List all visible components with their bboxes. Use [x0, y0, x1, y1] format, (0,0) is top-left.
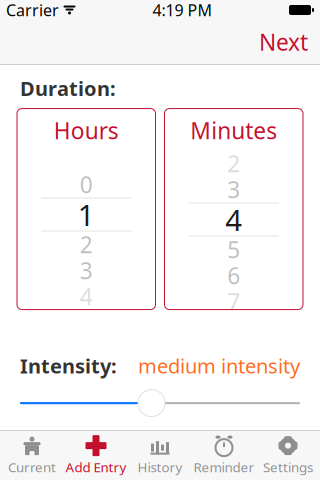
button[interactable]: Current	[0, 431, 64, 480]
staticText: 4	[225, 200, 242, 239]
staticText: 2	[227, 148, 240, 179]
button[interactable]: Next	[247, 19, 320, 65]
staticText: Minutes	[190, 115, 277, 146]
staticText: Add Entry	[65, 458, 126, 476]
staticText: Next	[259, 27, 308, 57]
staticText: Hours	[54, 115, 119, 146]
button[interactable]: Settings	[256, 431, 320, 480]
staticText: 3	[227, 174, 240, 205]
staticText: 6	[227, 260, 240, 291]
button[interactable]: Reminder	[192, 431, 256, 480]
staticText: 1	[78, 195, 95, 234]
button[interactable]: History	[128, 431, 192, 480]
staticText: 3	[80, 255, 93, 286]
staticText: History	[137, 458, 182, 476]
staticText: 7	[227, 286, 240, 317]
staticText: 0	[80, 169, 93, 200]
button[interactable]: Add Entry	[64, 431, 128, 480]
staticText: Current	[8, 458, 56, 476]
staticText: 2	[80, 229, 93, 260]
staticText: Carrier	[6, 0, 59, 21]
staticText: Settings	[263, 458, 313, 476]
staticText: 4	[80, 281, 93, 312]
staticText: 4:19 PM	[152, 0, 212, 21]
staticText: Intensity:	[20, 353, 117, 379]
staticText: 5	[227, 234, 240, 265]
staticText: medium intensity	[138, 353, 300, 379]
staticText: Reminder	[193, 458, 254, 476]
staticText: Duration:	[20, 75, 116, 102]
